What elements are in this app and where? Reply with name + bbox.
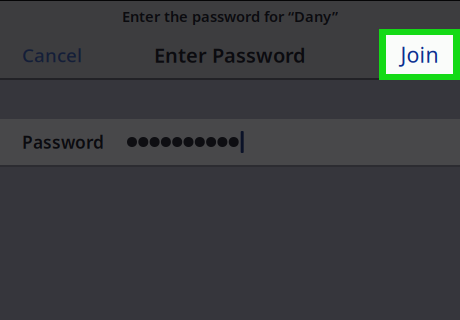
button[interactable]: Join <box>379 29 460 80</box>
staticText: Enter the password for “Dany” <box>122 6 338 26</box>
staticText: Join <box>400 40 438 69</box>
staticText: Password <box>22 130 104 153</box>
staticText: Enter Password <box>154 42 306 68</box>
button[interactable]: Cancel <box>0 30 96 78</box>
staticText: Cancel <box>22 43 82 67</box>
